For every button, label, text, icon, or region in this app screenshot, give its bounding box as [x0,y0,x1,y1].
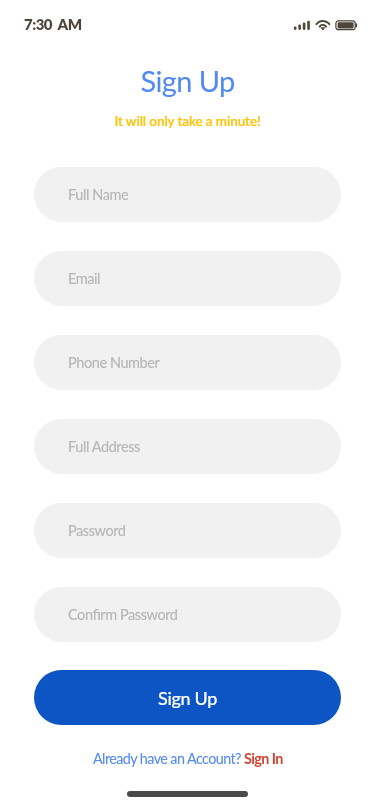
button[interactable]: Email [34,251,341,306]
staticText: Full Name [68,186,129,203]
button[interactable]: Phone Number [34,335,341,390]
button[interactable]: Password [34,503,341,558]
staticText: Confirm Password [68,606,178,623]
staticText: Already have an Account? [93,750,244,767]
staticText: Sign Up [158,687,217,709]
staticText: Email [68,270,101,287]
staticText: It will only take a minute! [0,113,375,129]
button[interactable]: Full Name [34,167,341,222]
staticText: Phone Number [68,354,160,371]
button[interactable]: Confirm Password [34,587,341,642]
staticText: Password [68,522,126,539]
staticText: Sign In [244,750,283,767]
staticText: Sign Up [0,63,375,98]
staticText: Full Address [68,438,140,455]
button[interactable]: Sign Up [34,670,341,725]
button[interactable]: Sign In [244,750,283,767]
staticText: 7:30 AM [24,15,82,33]
other: Signal, Wi-Fi and battery status [0,0,375,45]
button[interactable]: Full Address [34,419,341,474]
